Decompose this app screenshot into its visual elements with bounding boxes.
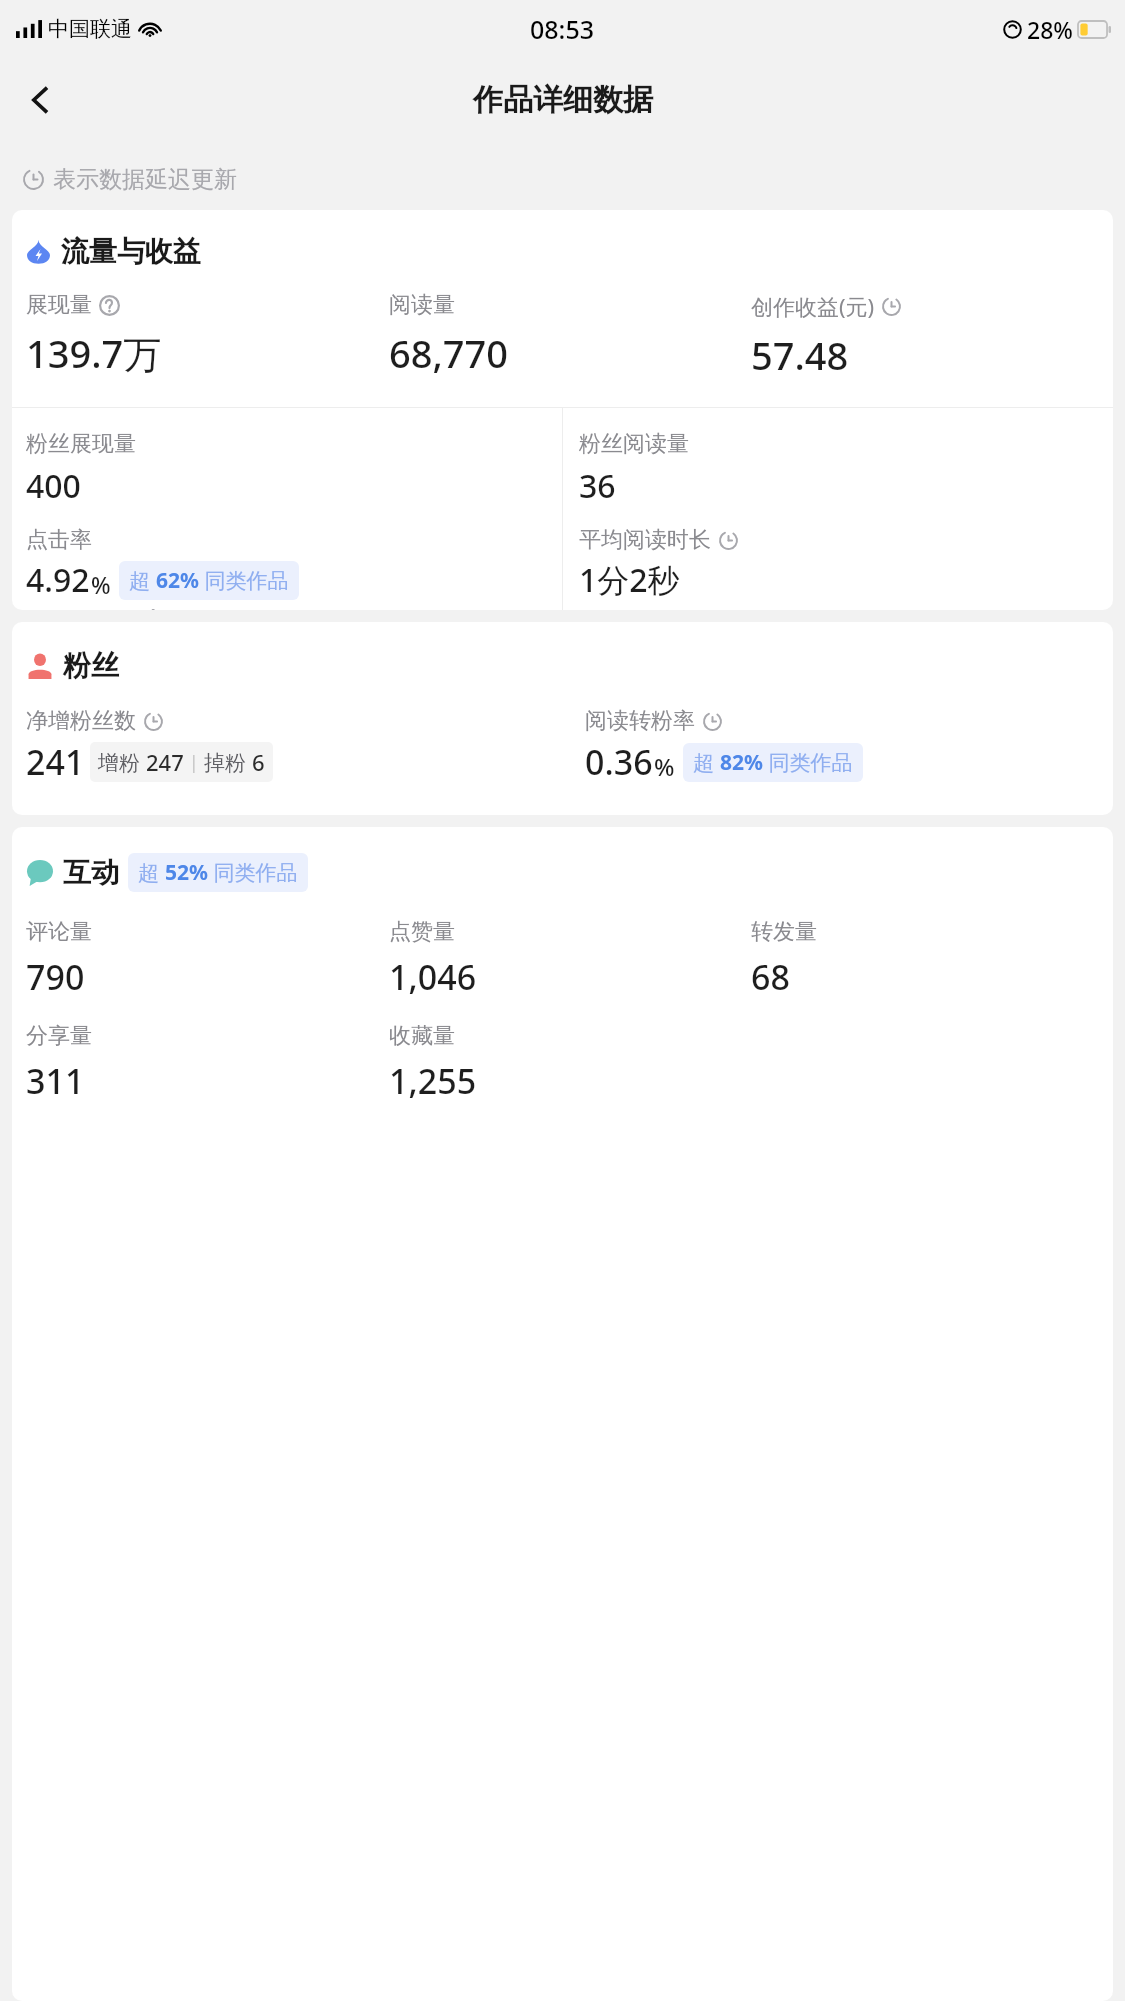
button[interactable]: 超 <box>683 743 863 782</box>
staticText: 净增粉丝数 <box>26 707 136 735</box>
staticText: 247 <box>146 747 184 777</box>
staticText: 139.7万 <box>26 327 162 379</box>
staticText: 粉丝 <box>63 648 119 683</box>
staticText: 4.92 <box>26 558 90 602</box>
staticText: 作品详细数据 <box>473 81 653 119</box>
staticText: 62% <box>156 566 199 595</box>
staticText: % <box>654 750 675 783</box>
staticText: 表示数据延迟更新 <box>53 165 237 194</box>
staticText: 收藏量 <box>389 1022 455 1050</box>
button[interactable]: 增粉 <box>90 742 273 782</box>
staticText: 超 <box>129 566 156 595</box>
staticText: 241 <box>26 739 85 785</box>
button[interactable]: 超 <box>119 561 299 600</box>
staticText: 同类作品 <box>763 748 853 777</box>
staticText: 阅读转粉率 <box>585 707 695 735</box>
button[interactable]: 超 <box>128 853 308 892</box>
staticText: | <box>184 750 204 775</box>
staticText: 1,046 <box>389 954 477 1000</box>
staticText: 分享量 <box>26 1022 92 1050</box>
staticText: % <box>91 569 111 600</box>
staticText: 增粉 <box>98 748 146 777</box>
staticText: 粉丝展现量 <box>26 430 136 458</box>
staticText: 创作收益(元) <box>751 291 875 321</box>
staticText: 68,770 <box>389 327 509 379</box>
button[interactable]: Back <box>12 72 68 128</box>
staticText: 超 <box>693 748 720 777</box>
staticText: 阅读量 <box>389 291 455 319</box>
staticText: 评论量 <box>26 918 92 946</box>
staticText: 展现量 <box>26 291 92 319</box>
staticText: 点赞量 <box>389 918 455 946</box>
staticText: 28% <box>1027 14 1073 45</box>
staticText: 1,255 <box>389 1058 477 1104</box>
staticText: 311 <box>26 1058 85 1104</box>
staticText: 同类作品 <box>208 858 298 887</box>
staticText: 平均阅读时长 <box>579 526 711 554</box>
staticText: 52% <box>165 858 208 887</box>
staticText: 中国联通 <box>48 16 132 42</box>
staticText: 36 <box>579 464 616 508</box>
staticText: 1分2秒 <box>579 558 680 602</box>
staticText: 同类作品 <box>199 566 289 595</box>
staticText: 超 <box>138 858 165 887</box>
staticText: 82% <box>720 748 763 777</box>
staticText: 400 <box>26 464 81 508</box>
staticText: 0.36 <box>585 739 653 785</box>
staticText: 掉粉 <box>204 748 252 777</box>
staticText: 68 <box>751 954 790 1000</box>
staticText: 08:53 <box>530 12 595 46</box>
staticText: 点击率 <box>26 526 92 554</box>
staticText: 粉丝阅读量 <box>579 430 689 458</box>
staticText: 转发量 <box>751 918 817 946</box>
staticText: 57.48 <box>751 329 849 381</box>
staticText: 流量与收益 <box>61 234 201 269</box>
staticText: 790 <box>26 954 85 1000</box>
staticText: 6 <box>252 747 265 777</box>
staticText: 互动 <box>63 855 119 890</box>
